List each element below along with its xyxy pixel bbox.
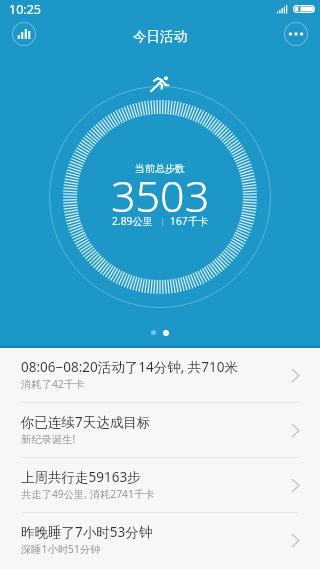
button[interactable]: 昨晚睡了7小时53分钟: [0, 513, 320, 568]
button[interactable]: Statistics: [10, 20, 38, 48]
staticText: 上周共行走59163步: [21, 468, 141, 486]
button[interactable]: 上周共行走59163步: [0, 458, 320, 513]
staticText: 10:25: [9, 1, 41, 18]
staticText: 3503: [111, 166, 210, 225]
staticText: 当前总步数: [135, 162, 185, 175]
staticText: 消耗了42千卡: [21, 377, 85, 391]
staticText: 新纪录诞生!: [21, 432, 76, 446]
staticText: 深睡1小时51分钟: [21, 542, 101, 556]
button[interactable]: More options: [282, 20, 310, 48]
staticText: 2.89公里: [112, 214, 154, 228]
staticText: 昨晚睡了7小时53分钟: [21, 523, 153, 541]
button[interactable]: 你已连续7天达成目标: [0, 403, 320, 458]
staticText: 今日活动: [133, 28, 187, 45]
staticText: 共走了49公里, 消耗2741千卡: [21, 487, 155, 501]
staticText: 你已连续7天达成目标: [21, 413, 151, 431]
staticText: 167千卡: [170, 214, 209, 228]
button[interactable]: 08:06−08:20活动了14分钟, 共710米: [0, 348, 320, 403]
staticText: 08:06−08:20活动了14分钟, 共710米: [21, 358, 238, 376]
